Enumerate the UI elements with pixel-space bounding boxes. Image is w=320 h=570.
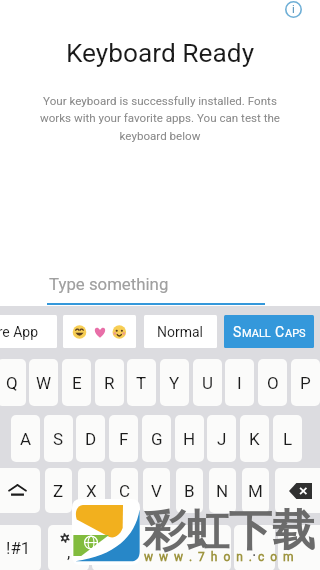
staticText: R	[104, 373, 115, 393]
staticText: Type something	[49, 274, 169, 294]
staticText: S	[53, 429, 64, 449]
button[interactable]: O	[258, 359, 287, 406]
staticText: !#1	[6, 538, 31, 558]
staticText: w w w . 7 h o n . c o m	[144, 550, 296, 564]
staticText: M	[248, 481, 263, 501]
staticText: Y	[169, 373, 180, 393]
staticText: C	[275, 324, 285, 340]
button[interactable]: M	[242, 468, 269, 513]
button[interactable]: Enter	[278, 525, 320, 570]
staticText: MALL	[242, 327, 271, 340]
button[interactable]: Info	[285, 1, 302, 18]
staticText: G	[151, 429, 163, 449]
staticText: Your keyboard is successfully installed.…	[20, 94, 300, 143]
button[interactable]: F	[109, 415, 138, 462]
staticText: Share App	[0, 324, 39, 340]
button[interactable]: E	[62, 359, 91, 406]
staticText: T	[136, 373, 147, 393]
button[interactable]: ,	[48, 525, 89, 570]
button[interactable]: Normal	[144, 315, 217, 348]
staticText: F	[119, 429, 129, 449]
button[interactable]: I	[225, 359, 254, 406]
button[interactable]: Space	[92, 525, 231, 570]
button[interactable]: !#1	[0, 525, 41, 570]
button[interactable]: Shift	[0, 468, 40, 513]
button[interactable]: C	[111, 468, 138, 513]
staticText: Keyboard Ready	[0, 38, 320, 69]
button[interactable]: S	[224, 315, 314, 348]
staticText: O	[267, 373, 279, 393]
staticText: A	[20, 429, 32, 449]
button[interactable]: T	[127, 359, 156, 406]
staticText: Normal	[157, 324, 204, 340]
button[interactable]: U	[193, 359, 222, 406]
button[interactable]: Emoji	[63, 315, 136, 348]
button[interactable]: .	[234, 525, 275, 570]
button[interactable]: Q	[0, 359, 26, 406]
button[interactable]: R	[95, 359, 124, 406]
staticText: P	[300, 373, 311, 393]
staticText: W	[36, 373, 52, 393]
button[interactable]: H	[175, 415, 204, 462]
button[interactable]: D	[76, 415, 105, 462]
staticText: .	[252, 540, 257, 560]
staticText: Z	[53, 481, 64, 501]
staticText: C	[119, 481, 131, 501]
staticText: U	[202, 373, 214, 393]
button[interactable]: P	[291, 359, 320, 406]
staticText: 彩虹下载	[143, 504, 315, 558]
staticText: N	[216, 481, 229, 501]
staticText: D	[85, 429, 97, 449]
button[interactable]: X	[78, 468, 105, 513]
button[interactable]: V	[143, 468, 170, 513]
button[interactable]: A	[11, 415, 40, 462]
staticText: ,	[67, 542, 71, 562]
button[interactable]: Z	[45, 468, 72, 513]
button[interactable]: Backspace	[275, 468, 320, 513]
staticText: L	[283, 429, 293, 449]
staticText: J	[217, 429, 227, 449]
button[interactable]: K	[240, 415, 269, 462]
staticText: E	[72, 373, 82, 393]
button[interactable]: W	[29, 359, 58, 406]
button[interactable]: N	[209, 468, 236, 513]
staticText: i	[292, 3, 295, 16]
staticText: X	[86, 481, 97, 501]
button[interactable]: L	[273, 415, 302, 462]
staticText: H	[183, 429, 196, 449]
button[interactable]: Share App	[0, 315, 57, 348]
staticText: S	[233, 324, 242, 340]
staticText: V	[151, 481, 162, 501]
button[interactable]: G	[142, 415, 171, 462]
button[interactable]: Y	[160, 359, 189, 406]
button[interactable]: B	[176, 468, 203, 513]
staticText: B	[184, 481, 195, 501]
staticText: APS	[285, 327, 306, 340]
staticText: Q	[6, 373, 18, 393]
button[interactable]: S	[44, 415, 73, 462]
button[interactable]: J	[207, 415, 236, 462]
staticText: K	[249, 429, 260, 449]
staticText: I	[237, 373, 242, 393]
